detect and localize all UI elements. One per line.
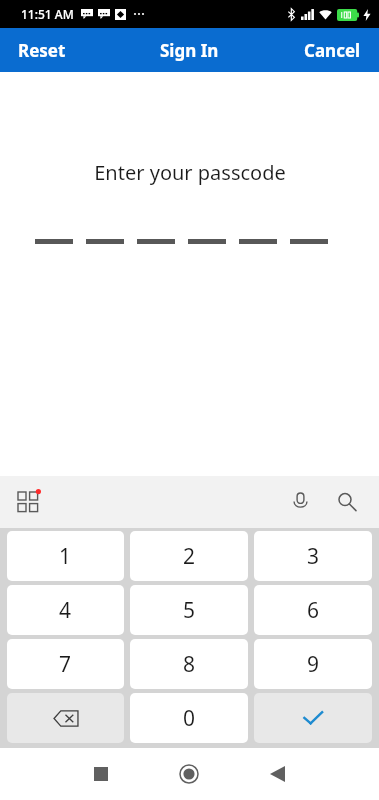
staticText: Enter your passcode xyxy=(94,159,286,186)
button[interactable]: Keyboard layouts xyxy=(10,484,46,520)
button[interactable]: 2 xyxy=(130,531,248,581)
button[interactable]: Recent apps xyxy=(78,751,124,797)
button[interactable]: 3 xyxy=(254,531,372,581)
staticText: 5 xyxy=(183,596,196,625)
button[interactable]: 1 xyxy=(7,531,124,581)
button[interactable]: 9 xyxy=(254,639,372,689)
button[interactable]: Home xyxy=(164,749,214,799)
staticText: 11:51 AM xyxy=(21,6,74,22)
button[interactable]: Confirm xyxy=(254,693,372,743)
staticText: Sign In xyxy=(160,39,219,62)
staticText: 7 xyxy=(59,650,72,679)
button[interactable]: Search xyxy=(329,484,365,520)
button[interactable]: Reset xyxy=(0,31,84,70)
staticText: 1 xyxy=(59,542,72,571)
button[interactable]: Cancel xyxy=(286,31,379,70)
staticText: Reset xyxy=(18,39,66,62)
button[interactable]: 7 xyxy=(7,639,124,689)
button[interactable]: 5 xyxy=(130,585,248,635)
staticText: 0 xyxy=(183,704,196,733)
button[interactable]: 6 xyxy=(254,585,372,635)
staticText: 9 xyxy=(307,650,320,679)
staticText: 4 xyxy=(59,596,72,625)
staticText: 8 xyxy=(183,650,196,679)
button[interactable]: 0 xyxy=(130,693,248,743)
button[interactable]: Voice input xyxy=(284,484,317,520)
staticText: 6 xyxy=(307,596,320,625)
button[interactable]: Back xyxy=(254,750,301,798)
staticText: 3 xyxy=(307,542,320,571)
button[interactable]: 8 xyxy=(130,639,248,689)
button[interactable]: Backspace xyxy=(7,693,124,743)
button[interactable]: 4 xyxy=(7,585,124,635)
staticText: 2 xyxy=(183,542,196,571)
staticText: Cancel xyxy=(304,39,361,62)
